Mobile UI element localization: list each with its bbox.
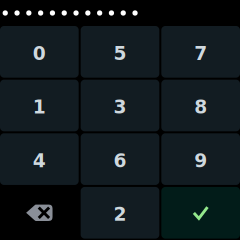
staticText: 4 (33, 150, 46, 172)
staticText: 5 (113, 43, 126, 64)
button[interactable]: 3 (81, 80, 159, 131)
staticText: 7 (194, 43, 207, 64)
button[interactable]: 8 (161, 80, 240, 131)
staticText: 9 (194, 150, 207, 172)
staticText: 3 (113, 96, 126, 118)
button[interactable]: 7 (161, 26, 240, 78)
staticText: 1 (33, 96, 46, 118)
button[interactable]: 2 (81, 187, 159, 238)
staticText: 2 (113, 203, 126, 225)
button[interactable]: 6 (81, 133, 159, 185)
button[interactable]: 0 (0, 26, 79, 78)
button[interactable]: Confirm passcode (161, 187, 240, 238)
button[interactable]: 9 (161, 133, 240, 185)
staticText: 6 (113, 150, 126, 172)
staticText: 0 (33, 43, 46, 64)
button[interactable]: 5 (81, 26, 159, 78)
button[interactable]: 1 (0, 80, 79, 131)
button[interactable]: Delete (0, 187, 79, 238)
button[interactable]: 4 (0, 133, 79, 185)
staticText: 8 (194, 96, 207, 118)
